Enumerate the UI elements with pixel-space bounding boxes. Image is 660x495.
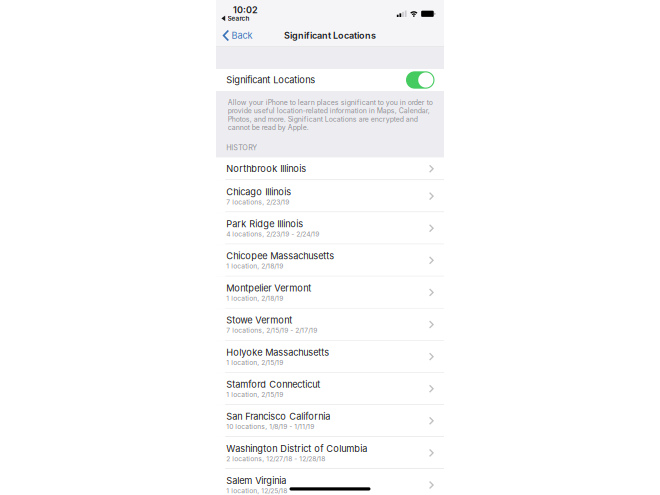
staticText: Holyoke Massachusetts [226, 347, 329, 358]
staticText: 2 locations, 12/27/18 - 12/28/18 [226, 455, 325, 463]
button[interactable]: Montpelier Vermont [216, 276, 444, 308]
button[interactable]: Chicopee Massachusetts [216, 244, 444, 276]
staticText: Salem Virginia [226, 475, 286, 486]
button[interactable]: Back [216, 24, 257, 47]
staticText: Park Ridge Illinois [226, 218, 303, 229]
button[interactable]: Stamford Connecticut [216, 373, 444, 405]
staticText: Northbrook Illinois [226, 163, 306, 174]
button[interactable]: Park Ridge Illinois [216, 212, 444, 244]
staticText: 1 location, 2/18/19 [226, 294, 283, 302]
staticText: 4 locations, 2/23/19 - 2/24/19 [226, 230, 319, 238]
button[interactable]: Northbrook Illinois [216, 157, 444, 180]
staticText: HISTORY [226, 143, 257, 152]
staticText: Stowe Vermont [226, 315, 292, 326]
button[interactable]: Washington District of Columbia [216, 437, 444, 469]
staticText: Chicopee Massachusetts [226, 250, 334, 261]
staticText: Washington District of Columbia [226, 443, 367, 454]
staticText: 1 location, 2/18/19 [226, 262, 283, 270]
staticText: Significant Locations [284, 30, 376, 41]
button[interactable]: Stowe Vermont [216, 308, 444, 341]
staticText: Montpelier Vermont [226, 282, 311, 294]
button[interactable]: Chicago Illinois [216, 180, 444, 212]
button[interactable]: Significant Locations [406, 71, 434, 89]
staticText: Chicago Illinois [226, 186, 291, 197]
button[interactable]: San Francisco California [216, 405, 444, 437]
button[interactable]: Holyoke Massachusetts [216, 341, 444, 373]
staticText: 1 location, 2/15/19 [226, 358, 283, 367]
staticText: 7 locations, 2/15/19 - 2/17/19 [226, 326, 317, 334]
staticText: Search [228, 14, 250, 22]
button[interactable]: Salem Virginia [216, 469, 444, 495]
staticText: 10:02 [233, 4, 258, 15]
staticText: 7 locations, 2/23/19 [226, 198, 289, 206]
staticText: 10 locations, 1/8/19 - 1/11/19 [226, 423, 314, 431]
staticText: Back [232, 30, 253, 41]
staticText: 1 location, 12/25/18 [226, 487, 287, 495]
staticText: Allow your iPhone to learn places signif… [228, 98, 433, 132]
staticText: Stamford Connecticut [226, 379, 320, 390]
staticText: Significant Locations [226, 74, 315, 86]
staticText: 1 location, 2/15/19 [226, 391, 283, 399]
staticText: San Francisco California [226, 411, 330, 422]
